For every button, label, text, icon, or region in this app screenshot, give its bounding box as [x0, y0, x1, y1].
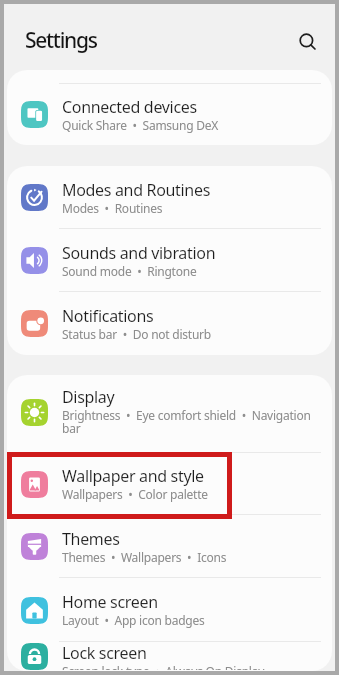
staticText: Wallpaper and style: [62, 465, 204, 487]
staticText: Themes • Wallpapers • Icons: [62, 549, 227, 565]
staticText: Quick Share • Samsung DeX: [62, 117, 219, 133]
staticText: Themes: [62, 528, 120, 550]
button[interactable]: Notifications: [7, 292, 332, 355]
button[interactable]: Modes and Routines: [7, 166, 332, 229]
button[interactable]: Sounds and vibration: [7, 229, 332, 292]
staticText: Display: [62, 386, 115, 408]
button[interactable]: Lock screen: [7, 642, 332, 671]
staticText: Connected devices: [62, 96, 197, 118]
staticText: Layout • App icon badges: [62, 612, 205, 628]
button[interactable]: Wallpaper and style: [7, 453, 332, 515]
button[interactable]: Search: [292, 26, 324, 58]
staticText: Brightness • Eye comfort shield • Naviga…: [62, 407, 311, 437]
staticText: Sound mode • Ringtone: [62, 263, 197, 279]
staticText: Wallpapers • Color palette: [62, 486, 208, 502]
staticText: Status bar • Do not disturb: [62, 326, 211, 342]
staticText: Screen lock type • Always On Display: [62, 663, 265, 670]
button[interactable]: Home screen: [7, 578, 332, 642]
staticText: Home screen: [62, 591, 158, 613]
staticText: Modes • Routines: [62, 200, 163, 216]
button[interactable]: Connected devices: [7, 84, 332, 145]
staticText: Lock screen: [62, 642, 147, 664]
button[interactable]: Themes: [7, 515, 332, 578]
staticText: Settings: [25, 26, 97, 55]
staticText: Modes and Routines: [62, 179, 210, 201]
staticText: Sounds and vibration: [62, 242, 216, 264]
staticText: Notifications: [62, 305, 154, 327]
button[interactable]: Display: [7, 375, 332, 453]
